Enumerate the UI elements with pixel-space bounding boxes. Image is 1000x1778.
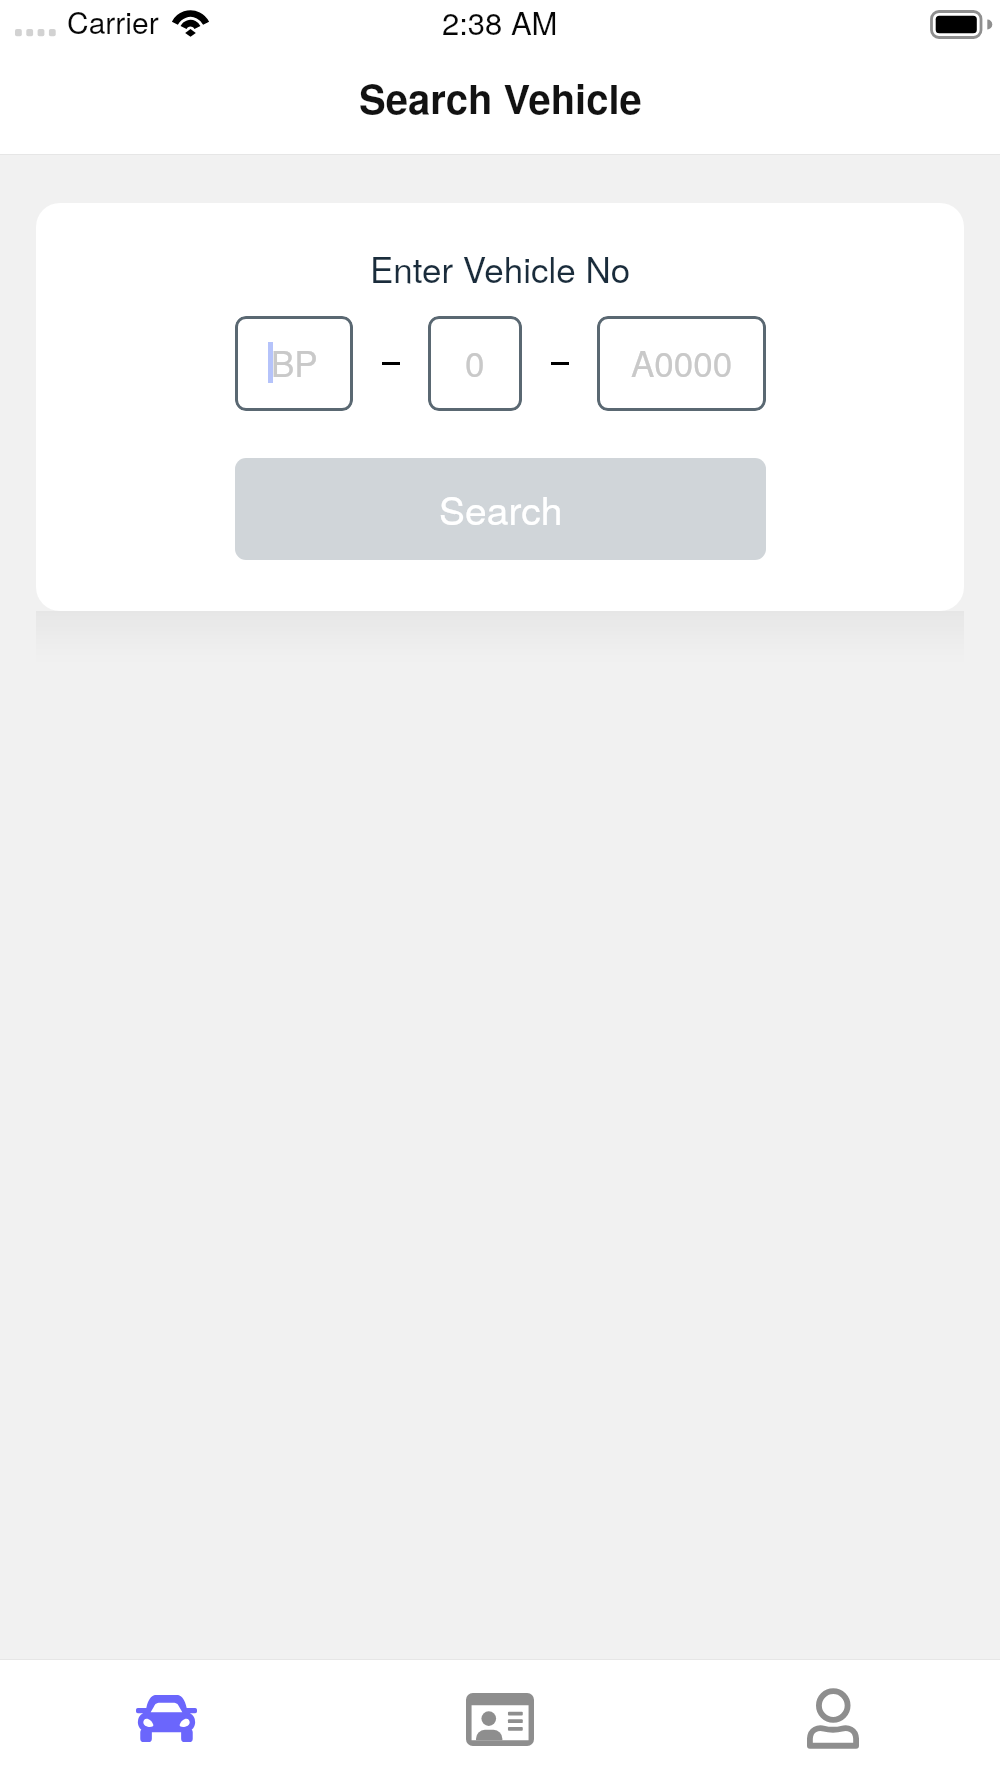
button[interactable]: Vehicles	[0, 1660, 334, 1778]
button[interactable]: BP	[235, 316, 353, 411]
button[interactable]: Profile	[667, 1660, 1000, 1778]
staticText: A0000	[631, 337, 733, 387]
staticText: Carrier	[67, 0, 159, 43]
button[interactable]: A0000	[597, 316, 766, 411]
staticText: 0	[465, 337, 485, 387]
staticText: Search Vehicle	[359, 69, 642, 126]
staticText: Enter Vehicle No	[370, 243, 631, 293]
button[interactable]: 0	[428, 316, 522, 411]
staticText: 2:38 AM	[442, 0, 558, 43]
staticText: Search	[439, 480, 563, 536]
button[interactable]: License card	[334, 1660, 667, 1778]
button[interactable]: Search	[235, 458, 766, 560]
staticText: BP	[271, 337, 318, 387]
